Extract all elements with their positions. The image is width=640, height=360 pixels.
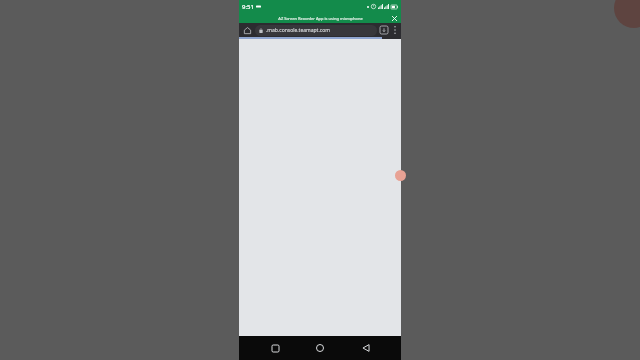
button[interactable]: Dismiss notification	[391, 15, 398, 22]
staticText: .mab.console.teamapt.com	[266, 27, 330, 34]
button[interactable]: Back	[356, 338, 376, 358]
button[interactable]: Chat support	[395, 170, 406, 181]
button[interactable]: Home	[241, 24, 253, 36]
staticText: 9:51	[242, 3, 254, 11]
staticText: AZ Screen Recorder App is using micropho…	[278, 16, 363, 21]
button[interactable]: Home	[310, 338, 330, 358]
button[interactable]: AZ Screen Recorder App is using micropho…	[239, 13, 401, 23]
button[interactable]: Recent apps	[265, 338, 285, 358]
button[interactable]: .mab.console.teamapt.com	[255, 25, 377, 36]
button[interactable]: Download page	[379, 25, 389, 35]
button[interactable]: More options	[390, 24, 399, 36]
